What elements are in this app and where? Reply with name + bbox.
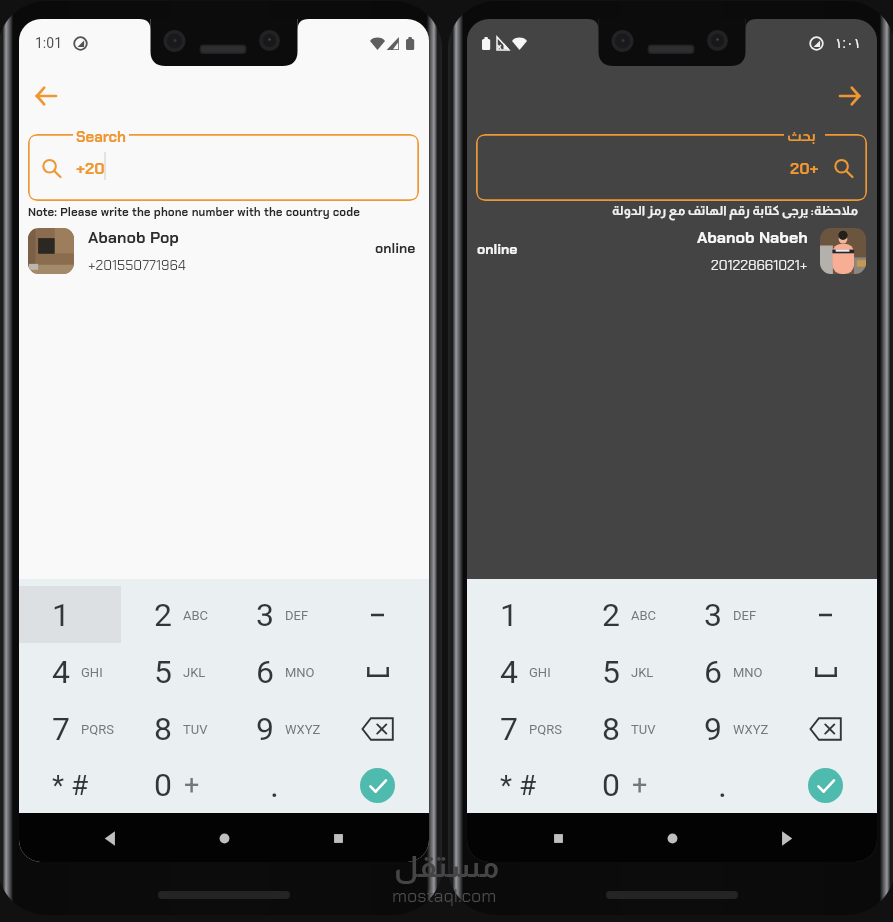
button[interactable]: 0 <box>121 757 223 813</box>
staticText: 1:01 <box>35 35 62 51</box>
staticText: 4 <box>500 653 518 691</box>
staticText: PQRS <box>81 722 114 737</box>
button[interactable]: 1 <box>467 586 569 643</box>
staticText: 0 <box>602 766 620 804</box>
staticText: 201228661021+ <box>711 256 808 274</box>
button[interactable]: back <box>87 815 133 861</box>
button[interactable]: Backspace <box>774 700 877 757</box>
staticText: Abanob Pop <box>88 227 179 248</box>
staticText: 1 <box>500 596 518 634</box>
button[interactable]: Back <box>23 73 69 119</box>
staticText: . <box>718 765 727 805</box>
button[interactable]: 3 <box>671 586 774 643</box>
staticText: online <box>477 240 518 258</box>
staticText: 8 <box>154 710 172 748</box>
other: Call <box>360 768 395 803</box>
staticText: mostaql.com <box>392 884 497 907</box>
staticText: ١:٠١ <box>835 35 861 51</box>
button[interactable] <box>774 643 877 700</box>
button[interactable]: 3 <box>223 586 326 643</box>
staticText: مستقل <box>394 850 500 883</box>
staticText: DEF <box>733 608 757 623</box>
button[interactable]: 7 <box>467 700 569 757</box>
button[interactable]: 4 <box>467 643 569 700</box>
staticText: MNO <box>285 665 315 680</box>
staticText: * # <box>52 769 89 802</box>
other: Backspace <box>809 717 842 741</box>
button[interactable]: 8 <box>121 700 223 757</box>
staticText: 6 <box>704 653 722 691</box>
button[interactable]: forward <box>763 815 809 861</box>
button[interactable]: Next <box>827 73 873 119</box>
staticText: 8 <box>602 710 620 748</box>
staticText: 5 <box>602 653 620 691</box>
staticText: 9 <box>704 710 722 748</box>
staticText: +201550771964 <box>88 256 186 274</box>
button[interactable]: +20 <box>28 134 419 201</box>
staticText: 0 <box>154 766 172 804</box>
other: Backspace <box>361 717 394 741</box>
staticText: Abanob Nabeh <box>697 227 808 248</box>
button[interactable]: home <box>201 815 247 861</box>
button[interactable]: 6 <box>671 643 774 700</box>
button[interactable]: 4 <box>19 643 121 700</box>
button[interactable]: * # <box>467 757 569 813</box>
staticText: 9 <box>256 710 274 748</box>
staticText: ABC <box>631 608 657 623</box>
staticText: + <box>184 769 200 801</box>
button[interactable]: . <box>223 757 326 813</box>
button[interactable]: 8 <box>569 700 671 757</box>
button[interactable]: Backspace <box>326 700 429 757</box>
staticText: 20+ <box>790 158 819 179</box>
button[interactable] <box>326 643 429 700</box>
button[interactable]: 2 <box>569 586 671 643</box>
button[interactable]: home <box>649 815 695 861</box>
staticText: 6 <box>256 653 274 691</box>
staticText: 4 <box>52 653 70 691</box>
button[interactable]: 20+ <box>476 134 867 201</box>
staticText: WXYZ <box>285 722 321 737</box>
staticText: بحث <box>787 127 816 144</box>
button[interactable]: 5 <box>121 643 223 700</box>
button[interactable]: recents <box>315 815 361 861</box>
button[interactable]: Call <box>326 757 429 813</box>
staticText: DEF <box>285 608 309 623</box>
staticText: 2 <box>154 596 172 634</box>
staticText: 5 <box>154 653 172 691</box>
staticText: +20 <box>76 158 105 179</box>
button[interactable]: 5 <box>569 643 671 700</box>
button[interactable]: . <box>671 757 774 813</box>
button[interactable]: 7 <box>19 700 121 757</box>
button[interactable]: 9 <box>671 700 774 757</box>
staticText: 3 <box>256 596 274 634</box>
button[interactable]: 2 <box>121 586 223 643</box>
button[interactable]: 9 <box>223 700 326 757</box>
staticText: online <box>375 239 416 257</box>
button[interactable] <box>326 586 429 643</box>
staticText: * # <box>500 769 537 802</box>
staticText: TUV <box>183 722 208 737</box>
staticText: 7 <box>52 710 70 748</box>
button[interactable]: 0 <box>569 757 671 813</box>
staticText: 1 <box>52 596 70 634</box>
staticText: + <box>632 769 648 801</box>
staticText: PQRS <box>529 722 562 737</box>
staticText: . <box>270 765 279 805</box>
button[interactable]: recents <box>535 815 581 861</box>
staticText: Note: Please write the phone number with… <box>28 205 361 220</box>
staticText: 3 <box>704 596 722 634</box>
other: Call <box>808 768 843 803</box>
staticText: JKL <box>183 665 206 680</box>
button[interactable]: * # <box>19 757 121 813</box>
button[interactable]: Abanob Nabeh <box>467 228 877 284</box>
button[interactable] <box>774 586 877 643</box>
staticText: 2 <box>602 596 620 634</box>
staticText: GHI <box>529 665 551 680</box>
button[interactable]: Call <box>774 757 877 813</box>
staticText: MNO <box>733 665 763 680</box>
staticText: JKL <box>631 665 654 680</box>
button[interactable]: 6 <box>223 643 326 700</box>
button[interactable]: 1 <box>19 586 121 643</box>
button[interactable]: Abanob Pop <box>19 228 429 284</box>
staticText: WXYZ <box>733 722 769 737</box>
